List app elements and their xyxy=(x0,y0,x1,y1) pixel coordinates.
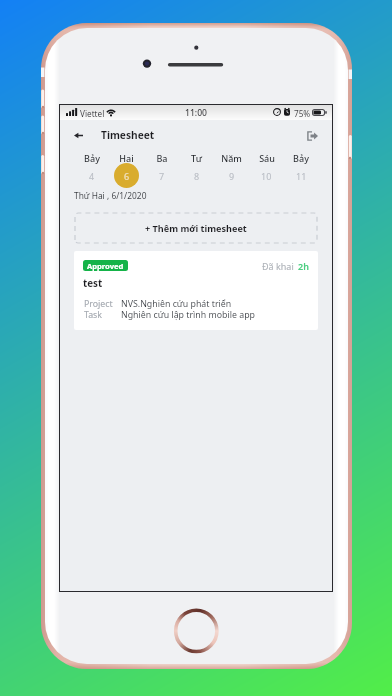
button[interactable]: Tư xyxy=(179,149,214,189)
staticText: Timesheet xyxy=(101,128,155,142)
staticText: 7 xyxy=(159,170,165,182)
staticText: Approved xyxy=(87,261,124,271)
staticText: NVS.Nghiên cứu phát triển xyxy=(121,298,232,310)
button[interactable]: Logout xyxy=(303,127,321,145)
staticText: Task xyxy=(84,309,103,321)
staticText: 8 xyxy=(194,170,200,182)
staticText: 9 xyxy=(229,170,235,182)
staticText: Thứ Hai , 6/1/2020 xyxy=(74,190,147,201)
staticText: Đã khai xyxy=(262,260,294,272)
staticText: Năm xyxy=(221,152,242,164)
button[interactable]: + Thêm mới timesheet xyxy=(75,213,317,243)
button[interactable]: Hai xyxy=(109,149,144,189)
staticText: test xyxy=(83,277,103,290)
staticText: Hai xyxy=(119,152,134,164)
staticText: Sáu xyxy=(259,152,275,164)
button[interactable]: Năm xyxy=(214,149,249,189)
staticText: Ba xyxy=(156,152,168,164)
staticText: Bảy xyxy=(84,152,100,164)
staticText: 4 xyxy=(89,170,95,182)
staticText: 11 xyxy=(296,170,307,182)
staticText: 2h xyxy=(298,260,309,272)
staticText: Project xyxy=(84,298,113,310)
staticText: + Thêm mới timesheet xyxy=(145,222,247,234)
staticText: 11:00 xyxy=(185,107,208,119)
staticText: 6 xyxy=(124,170,130,182)
button[interactable]: Back xyxy=(68,125,88,145)
button[interactable]: Sáu xyxy=(249,149,284,189)
button[interactable]: Bảy xyxy=(74,149,109,189)
staticText: Viettel xyxy=(80,108,105,119)
button[interactable]: Approved xyxy=(74,251,318,330)
staticText: 75% xyxy=(294,108,311,119)
staticText: 10 xyxy=(261,170,272,182)
staticText: Nghiên cứu lập trình mobile app xyxy=(121,309,256,321)
button[interactable]: Ba xyxy=(144,149,179,189)
button[interactable]: Bảy xyxy=(284,149,318,189)
staticText: Tư xyxy=(191,152,202,164)
staticText: Bảy xyxy=(293,152,309,164)
